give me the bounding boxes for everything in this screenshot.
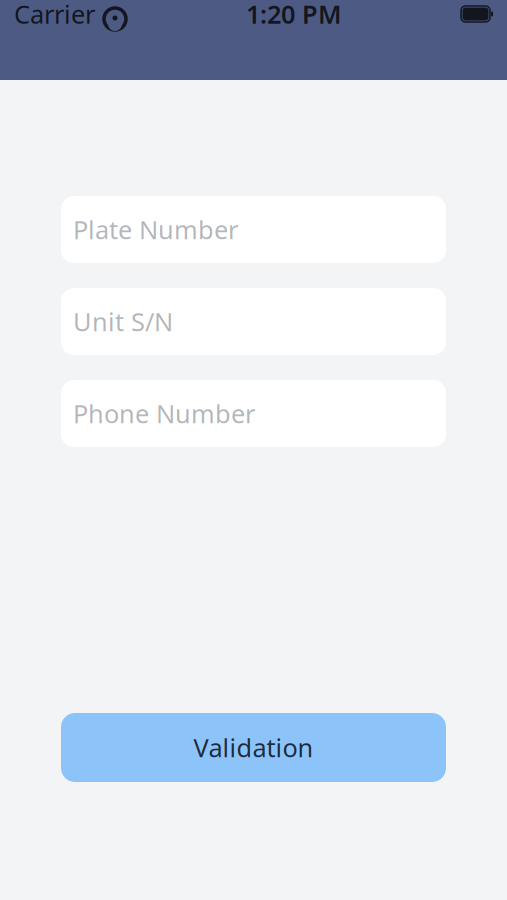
staticText: 1:20 PM [246, 0, 342, 31]
staticText: Unit S/N [73, 305, 173, 338]
button[interactable]: Unit S/N [61, 288, 446, 355]
button[interactable]: Plate Number [61, 196, 446, 263]
staticText: Phone Number [73, 397, 255, 430]
staticText: Carrier [14, 0, 95, 31]
button[interactable]: Validation [61, 713, 446, 782]
staticText: Validation [193, 731, 313, 764]
button[interactable]: Phone Number [61, 380, 446, 447]
staticText: Plate Number [73, 213, 238, 246]
